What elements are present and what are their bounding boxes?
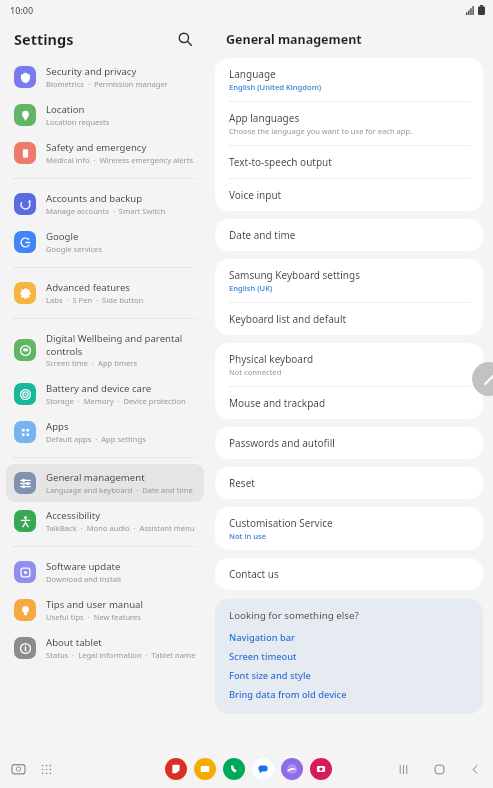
button[interactable]: Language <box>215 58 483 101</box>
staticText: Tips and user manual <box>46 598 143 611</box>
button[interactable]: Text-to-speech output <box>215 146 483 178</box>
staticText: Language <box>229 67 276 81</box>
staticText: Choose the language you want to use for … <box>229 126 413 136</box>
staticText: Settings <box>14 29 74 49</box>
staticText: Default apps · App settings <box>46 434 146 444</box>
staticText: Digital Wellbeing and parental controls <box>46 332 196 357</box>
staticText: Labs · S Pen · Side button <box>46 295 144 305</box>
button[interactable]: About tablet <box>6 629 204 667</box>
staticText: Mouse and trackpad <box>229 396 326 410</box>
button[interactable]: Tips and user manual <box>6 591 204 629</box>
staticText: Samsung Keyboard settings <box>229 268 360 282</box>
staticText: Manage accounts · Smart Switch <box>46 206 166 216</box>
staticText: Apps <box>46 420 69 433</box>
button[interactable]: Security and privacy <box>6 58 204 96</box>
staticText: Accounts and backup <box>46 192 143 205</box>
button[interactable]: Safety and emergency <box>6 134 204 172</box>
button[interactable]: Accounts and backup <box>6 185 204 223</box>
staticText: Navigation bar <box>229 631 296 644</box>
staticText: Text-to-speech output <box>229 155 332 169</box>
staticText: Date and time <box>229 228 296 242</box>
staticText: Looking for something else? <box>229 609 359 622</box>
staticText: Not in use <box>229 531 267 541</box>
staticText: Storage · Memory · Device protection <box>46 396 186 406</box>
button[interactable]: Battery and device care <box>6 375 204 413</box>
button[interactable]: Bring data from old device <box>229 685 471 704</box>
staticText: Google services <box>46 244 103 254</box>
button[interactable]: Navigation bar <box>229 628 471 647</box>
staticText: Useful tips · New features <box>46 612 141 622</box>
staticText: Medical info · Wireless emergency alerts <box>46 155 194 165</box>
staticText: Language and keyboard · Date and time <box>46 485 193 495</box>
staticText: Passwords and autofill <box>229 436 335 450</box>
button[interactable]: Physical keyboard <box>215 343 483 386</box>
button[interactable]: Samsung Keyboard settings <box>215 259 483 302</box>
staticText: English (United Kingdom) <box>229 82 322 92</box>
button[interactable]: Customisation Service <box>215 507 483 550</box>
button[interactable]: Home <box>421 751 457 787</box>
staticText: Software update <box>46 560 121 573</box>
button[interactable]: Passwords and autofill <box>215 427 483 459</box>
staticText: General management <box>46 471 145 484</box>
button[interactable]: Back <box>457 751 493 787</box>
button[interactable]: App 4 <box>281 758 303 780</box>
staticText: Reset <box>229 476 255 490</box>
button[interactable]: General management <box>6 464 204 502</box>
staticText: Font size and style <box>229 669 311 682</box>
staticText: 10:00 <box>10 4 34 16</box>
staticText: Status · Legal information · Tablet name <box>46 650 196 660</box>
button[interactable]: Edit <box>472 362 493 396</box>
staticText: English (UK) <box>229 283 273 293</box>
button[interactable]: App 2 <box>223 758 245 780</box>
staticText: Not connected <box>229 367 282 377</box>
staticText: Bring data from old device <box>229 688 347 701</box>
button[interactable]: Advanced features <box>6 274 204 312</box>
button[interactable]: All apps <box>35 758 57 780</box>
button[interactable]: App languages <box>215 102 483 145</box>
staticText: Download and install <box>46 574 121 584</box>
staticText: App languages <box>229 111 300 125</box>
staticText: Google <box>46 230 79 243</box>
button[interactable]: Voice input <box>215 179 483 211</box>
button[interactable]: Font size and style <box>229 666 471 685</box>
button[interactable]: App 5 <box>310 758 332 780</box>
staticText: Safety and emergency <box>46 141 147 154</box>
button[interactable]: Date and time <box>215 219 483 251</box>
staticText: Voice input <box>229 188 282 202</box>
button[interactable]: App 1 <box>194 758 216 780</box>
button[interactable]: Apps <box>6 413 204 451</box>
staticText: Contact us <box>229 567 279 581</box>
staticText: TalkBack · Mono audio · Assistant menu <box>46 523 195 533</box>
button[interactable]: Search <box>172 26 198 52</box>
button[interactable]: App 0 <box>165 758 187 780</box>
button[interactable]: Location <box>6 96 204 134</box>
button[interactable]: Recents panel <box>7 758 29 780</box>
button[interactable]: Screen timeout <box>229 647 471 666</box>
button[interactable]: Digital Wellbeing and parental controls <box>6 325 204 375</box>
button[interactable]: Contact us <box>215 558 483 590</box>
button[interactable]: App 3 <box>252 758 274 780</box>
button[interactable]: Reset <box>215 467 483 499</box>
staticText: Physical keyboard <box>229 352 314 366</box>
staticText: Keyboard list and default <box>229 312 347 326</box>
staticText: Advanced features <box>46 281 130 294</box>
button[interactable]: Recents <box>385 751 421 787</box>
staticText: Battery and device care <box>46 382 152 395</box>
button[interactable]: Software update <box>6 553 204 591</box>
staticText: Location requests <box>46 117 110 127</box>
button[interactable]: Keyboard list and default <box>215 303 483 335</box>
staticText: Screen time · App timers <box>46 358 138 368</box>
button[interactable]: Accessibility <box>6 502 204 540</box>
staticText: Accessibility <box>46 509 101 522</box>
staticText: Screen timeout <box>229 650 297 663</box>
staticText: General management <box>226 31 362 48</box>
staticText: Biometrics · Permission manager <box>46 79 168 89</box>
staticText: Location <box>46 103 85 116</box>
button[interactable]: Mouse and trackpad <box>215 387 483 419</box>
staticText: Security and privacy <box>46 65 137 78</box>
staticText: About tablet <box>46 636 102 649</box>
button[interactable]: Google <box>6 223 204 261</box>
staticText: Customisation Service <box>229 516 333 530</box>
